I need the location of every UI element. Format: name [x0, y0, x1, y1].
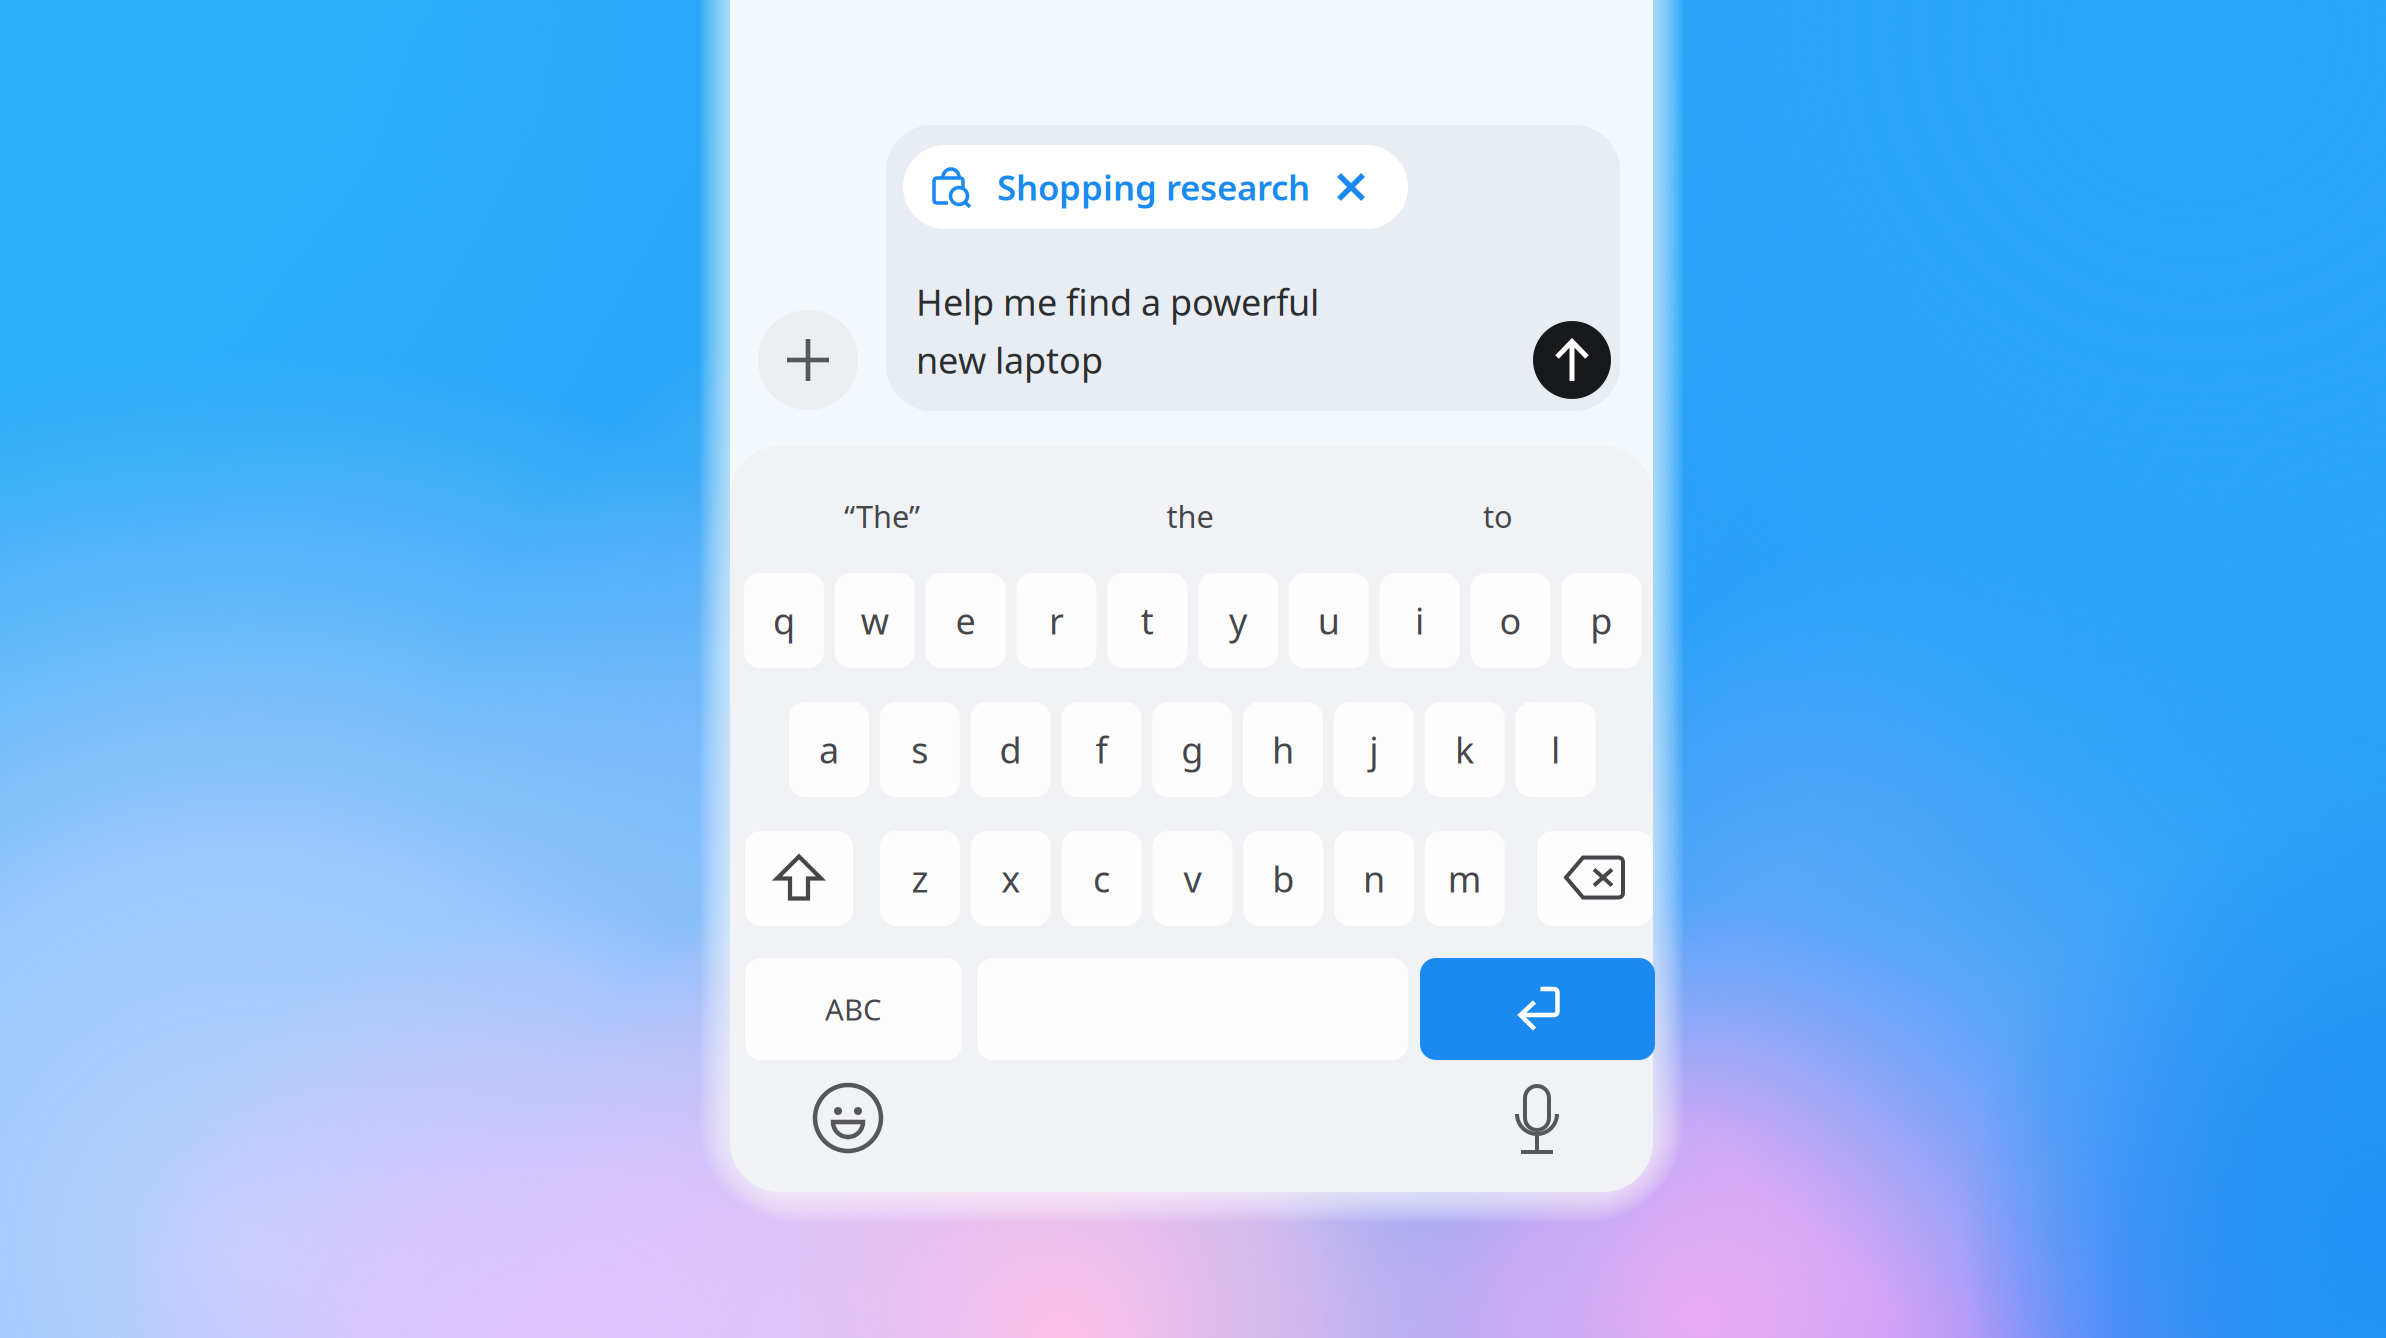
- staticText: u: [1318, 597, 1340, 644]
- staticText: r: [1049, 597, 1064, 644]
- button[interactable]: Shopping research: [903, 145, 1408, 229]
- button[interactable]: h: [1243, 702, 1323, 797]
- button[interactable]: Send: [1533, 321, 1611, 399]
- staticText: z: [911, 855, 928, 902]
- staticText: x: [1001, 855, 1020, 902]
- staticText: a: [819, 726, 839, 773]
- button[interactable]: o: [1470, 573, 1550, 668]
- staticText: w: [861, 597, 889, 644]
- staticText: k: [1455, 726, 1474, 773]
- button[interactable]: f: [1061, 702, 1141, 797]
- staticText: e: [956, 597, 976, 644]
- button[interactable]: x: [971, 831, 1051, 926]
- button[interactable]: d: [971, 702, 1051, 797]
- staticText: m: [1448, 855, 1482, 902]
- button[interactable]: Return: [1420, 958, 1655, 1060]
- staticText: c: [1093, 855, 1110, 902]
- button[interactable]: m: [1425, 831, 1505, 926]
- staticText: n: [1363, 855, 1385, 902]
- staticText: d: [1000, 726, 1022, 773]
- staticText: j: [1369, 726, 1378, 773]
- button[interactable]: Shift: [745, 831, 853, 926]
- button[interactable]: j: [1334, 702, 1414, 797]
- button[interactable]: z: [880, 831, 960, 926]
- staticText: p: [1590, 597, 1612, 644]
- staticText: q: [773, 597, 795, 644]
- button[interactable]: g: [1152, 702, 1232, 797]
- button[interactable]: Dictate: [1508, 1082, 1566, 1160]
- button[interactable]: p: [1561, 573, 1641, 668]
- button[interactable]: n: [1334, 831, 1414, 926]
- button[interactable]: Emoji: [814, 1084, 882, 1152]
- staticText: “The”: [844, 496, 920, 536]
- staticText: b: [1272, 855, 1294, 902]
- staticText: i: [1415, 597, 1424, 644]
- staticText: v: [1183, 855, 1201, 902]
- staticText: h: [1272, 726, 1294, 773]
- button[interactable]: k: [1425, 702, 1505, 797]
- staticText: o: [1499, 597, 1521, 644]
- staticText: s: [911, 726, 928, 773]
- button[interactable]: u: [1289, 573, 1369, 668]
- button[interactable]: l: [1515, 702, 1595, 797]
- button[interactable]: i: [1380, 573, 1460, 668]
- button[interactable]: y: [1198, 573, 1278, 668]
- staticText: f: [1095, 726, 1107, 773]
- staticText: Help me find a powerful: [916, 278, 1319, 326]
- button[interactable]: s: [880, 702, 960, 797]
- button[interactable]: t: [1107, 573, 1187, 668]
- staticText: the: [1166, 496, 1213, 536]
- staticText: to: [1483, 496, 1513, 536]
- button[interactable]: Add attachment: [758, 310, 858, 410]
- staticText: g: [1181, 726, 1203, 773]
- button[interactable]: r: [1016, 573, 1096, 668]
- button[interactable]: q: [744, 573, 824, 668]
- staticText: l: [1551, 726, 1560, 773]
- button[interactable]: w: [835, 573, 915, 668]
- button[interactable]: v: [1152, 831, 1232, 926]
- staticText: t: [1141, 597, 1154, 644]
- button[interactable]: e: [926, 573, 1006, 668]
- button[interactable]: c: [1062, 831, 1142, 926]
- staticText: Shopping research: [997, 164, 1310, 210]
- button[interactable]: a: [789, 702, 869, 797]
- button[interactable]: b: [1243, 831, 1323, 926]
- staticText: new laptop: [916, 336, 1103, 384]
- button[interactable]: ABC: [745, 958, 962, 1060]
- button[interactable]: Delete: [1537, 831, 1653, 926]
- staticText: y: [1229, 597, 1247, 644]
- staticText: ABC: [825, 989, 882, 1028]
